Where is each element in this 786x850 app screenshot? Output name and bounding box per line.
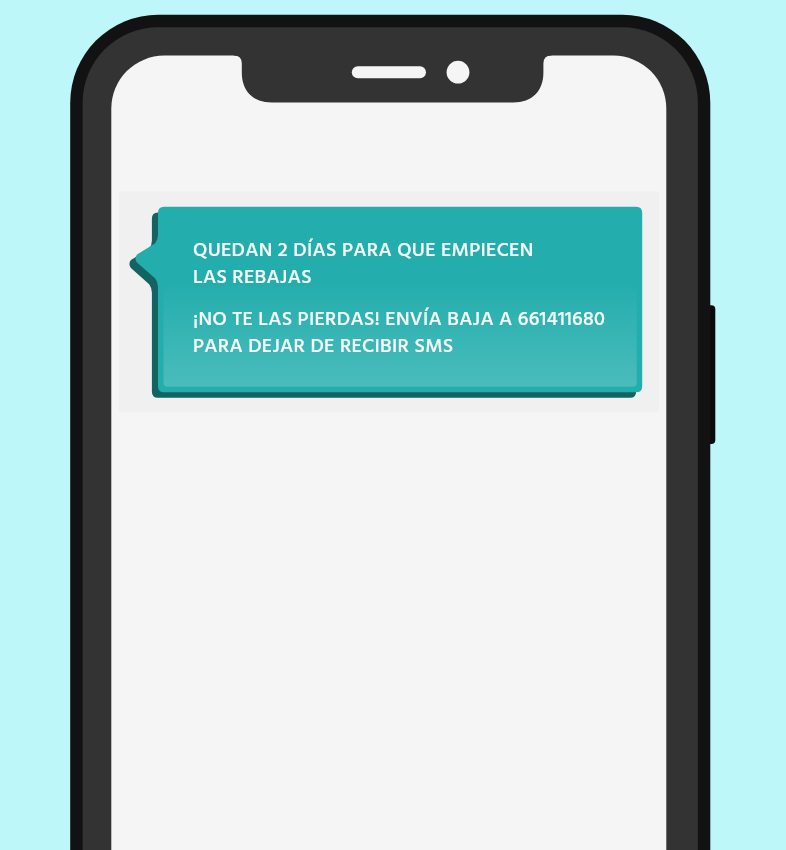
staticText: QUEDAN 2 DÍAS PARA QUE EMPIECEN xyxy=(193,235,534,267)
staticText: LAS REBAJAS xyxy=(193,262,312,294)
button[interactable]: Power button xyxy=(700,305,715,444)
button[interactable]: QUEDAN 2 DÍAS PARA QUE EMPIECEN xyxy=(134,207,642,392)
staticText: PARA DEJAR DE RECIBIR SMS xyxy=(193,331,454,363)
staticText: ¡NO TE LAS PIERDAS! ENVÍA BAJA A 6614116… xyxy=(193,304,606,336)
